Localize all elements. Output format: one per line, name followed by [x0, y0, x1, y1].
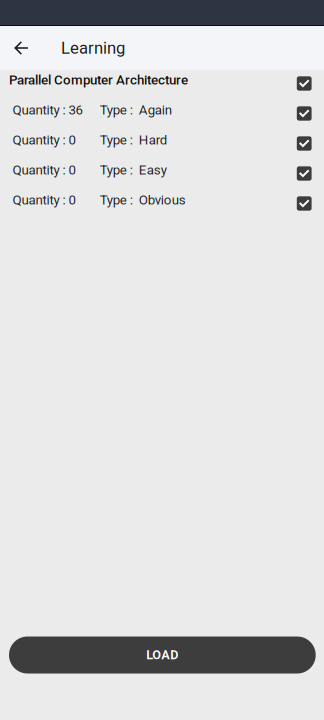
staticText: Quantity : 0 [12, 132, 75, 148]
staticText: Type : Hard [100, 132, 168, 148]
staticText: Learning [61, 38, 125, 58]
staticText: Type : Again [100, 102, 172, 118]
staticText: Parallel Computer Architecture [9, 72, 188, 88]
staticText: Type : Easy [100, 162, 167, 178]
button[interactable]: Quantity : 0 [0, 188, 324, 218]
staticText: Quantity : 36 [12, 102, 82, 118]
button[interactable]: LOAD [9, 636, 316, 673]
button[interactable]: Back [0, 26, 42, 70]
button[interactable]: Quantity : 36 [0, 98, 324, 128]
staticText: Quantity : 0 [12, 192, 75, 208]
staticText: LOAD [146, 648, 178, 662]
button[interactable]: Quantity : 0 [0, 128, 324, 158]
staticText: Quantity : 0 [12, 162, 75, 178]
button[interactable]: Parallel Computer Architecture [0, 68, 324, 98]
button[interactable]: Quantity : 0 [0, 158, 324, 188]
staticText: Type : Obvious [100, 192, 186, 208]
